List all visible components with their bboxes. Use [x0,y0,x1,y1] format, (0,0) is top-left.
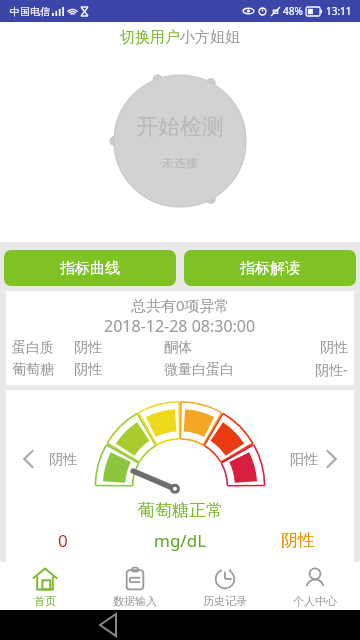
button[interactable]: 数据输入 [90,562,180,608]
staticText: 阴性 [281,530,315,551]
staticText: 指标解读 [240,259,300,278]
staticText: 数据输入 [113,594,157,608]
staticText: 48% [283,4,303,18]
button[interactable]: 下一项 [318,446,344,472]
staticText: 阴性 [74,339,164,357]
button[interactable]: 指标解读 [184,250,356,286]
staticText: 未连接 [162,155,198,170]
staticText: 中国电信 [10,5,50,18]
button[interactable]: 个人中心 [270,562,360,608]
staticText: 葡萄糖正常 [138,500,223,521]
staticText: 阴性- [315,360,348,379]
staticText: 葡萄糖 [12,361,74,379]
button[interactable]: 上一项 [16,446,42,472]
button[interactable]: 开始检测 [113,74,247,208]
staticText: 0 [58,529,68,552]
button[interactable]: 指标曲线 [4,250,176,286]
staticText: 2018-12-28 08:30:00 [104,315,256,337]
staticText: 切换用户 [120,28,180,47]
staticText: 蛋白质 [12,339,74,357]
staticText: 总共有0项异常 [131,295,230,315]
button[interactable]: 首页 [0,562,90,608]
staticText: 阳性 [290,451,318,469]
staticText: 阴性 [74,361,164,379]
staticText: 指标曲线 [60,259,120,278]
staticText: 历史记录 [203,594,247,608]
button[interactable]: 历史记录 [180,562,270,608]
staticText: 首页 [34,594,56,608]
staticText: mg/dL [154,529,207,552]
staticText: 13:11 [326,4,352,18]
staticText: 小方姐姐 [180,28,240,47]
staticText: 阴性 [320,339,348,357]
staticText: 个人中心 [293,594,337,608]
button[interactable]: 切换用户 [0,22,360,52]
staticText: 微量白蛋白 [164,361,315,379]
staticText: 阴性 [49,451,77,469]
staticText: 酮体 [164,339,320,357]
staticText: 开始检测 [136,113,224,141]
